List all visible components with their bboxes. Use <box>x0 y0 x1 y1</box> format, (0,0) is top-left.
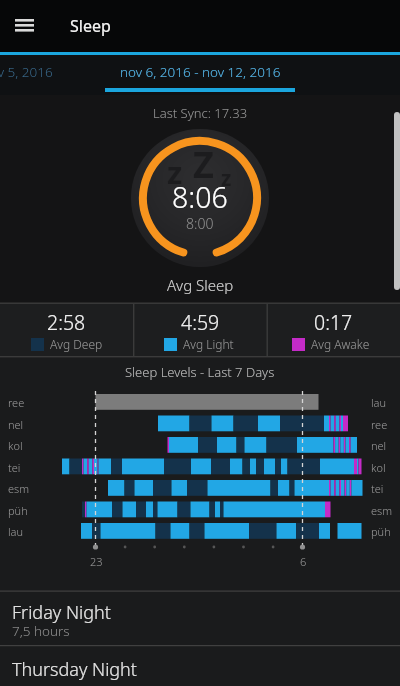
staticText: 8:06 <box>172 178 228 217</box>
button[interactable] <box>0 591 400 645</box>
staticText: nov 6, 2016 - nov 12, 2016 <box>120 63 281 81</box>
staticText: esm <box>371 503 393 518</box>
staticText: tei <box>371 481 384 496</box>
staticText: 0:17 <box>314 309 353 336</box>
staticText: 23 <box>90 554 103 569</box>
staticText: nel <box>371 438 387 453</box>
staticText: z <box>221 164 232 193</box>
button[interactable] <box>0 55 100 95</box>
staticText: tei <box>8 460 21 475</box>
staticText: 2:58 <box>47 309 86 336</box>
button[interactable] <box>0 304 133 356</box>
staticText: Avg Sleep <box>167 275 234 295</box>
staticText: Avg Deep <box>50 336 103 352</box>
staticText: Friday Night <box>12 600 111 625</box>
staticText: kol <box>371 460 386 475</box>
staticText: Sleep Levels - Last 7 Days <box>125 363 275 381</box>
staticText: Avg Awake <box>311 336 370 352</box>
staticText: ree <box>8 395 25 410</box>
staticText: 6 <box>300 554 307 569</box>
button[interactable] <box>0 646 400 686</box>
staticText: Thursday Night <box>12 657 137 682</box>
button[interactable] <box>268 304 400 356</box>
staticText: esm <box>8 481 30 496</box>
staticText: Z <box>193 140 214 188</box>
staticText: 4:59 <box>181 309 220 336</box>
staticText: 7,5 hours <box>12 622 70 640</box>
button[interactable] <box>100 55 300 95</box>
staticText: ree <box>371 417 388 432</box>
staticText: lau <box>371 395 386 410</box>
staticText: Sleep <box>70 15 111 37</box>
button[interactable] <box>0 0 56 52</box>
staticText: 8:00 <box>186 214 214 233</box>
staticText: z <box>167 151 183 193</box>
button[interactable] <box>134 304 267 356</box>
staticText: Avg Light <box>183 336 234 352</box>
staticText: nov 5, 2016 <box>0 63 53 81</box>
staticText: püh <box>371 524 391 539</box>
staticText: püh <box>8 503 28 518</box>
staticText: nel <box>8 417 24 432</box>
staticText: lau <box>8 524 23 539</box>
staticText: kol <box>8 438 23 453</box>
staticText: Last Sync: 17.33 <box>153 104 248 122</box>
